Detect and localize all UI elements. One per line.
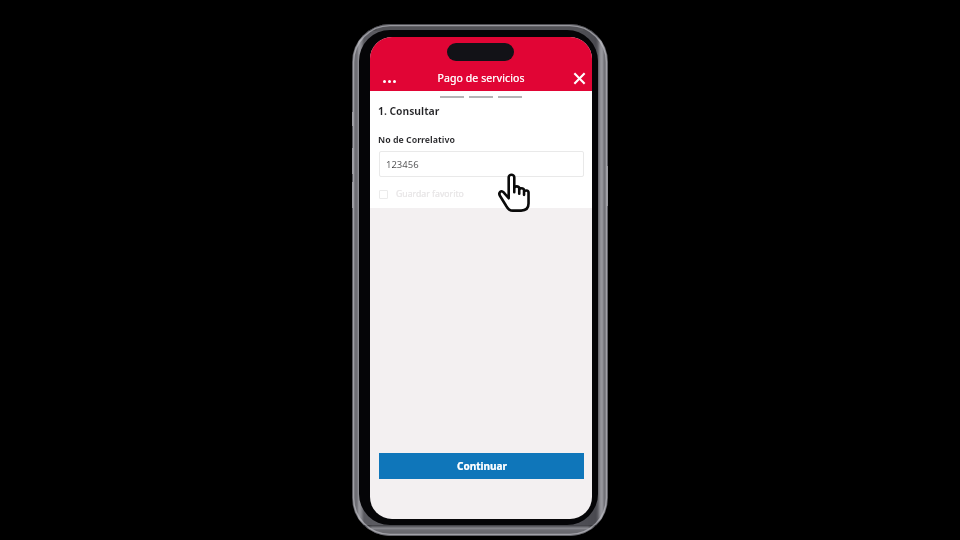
button[interactable]: Close: [567, 69, 591, 87]
button[interactable]: More options: [376, 73, 402, 89]
staticText: Pago de servicios: [437, 71, 525, 85]
staticText: 123456: [386, 158, 419, 171]
staticText: No de Correlativo: [378, 134, 455, 146]
button[interactable]: 123456: [379, 151, 584, 177]
button[interactable]: Guardar favorito: [379, 187, 464, 201]
staticText: Guardar favorito: [396, 188, 464, 200]
staticText: Continuar: [457, 459, 507, 473]
staticText: 1. Consultar: [378, 104, 440, 118]
button[interactable]: Continuar: [379, 453, 584, 479]
